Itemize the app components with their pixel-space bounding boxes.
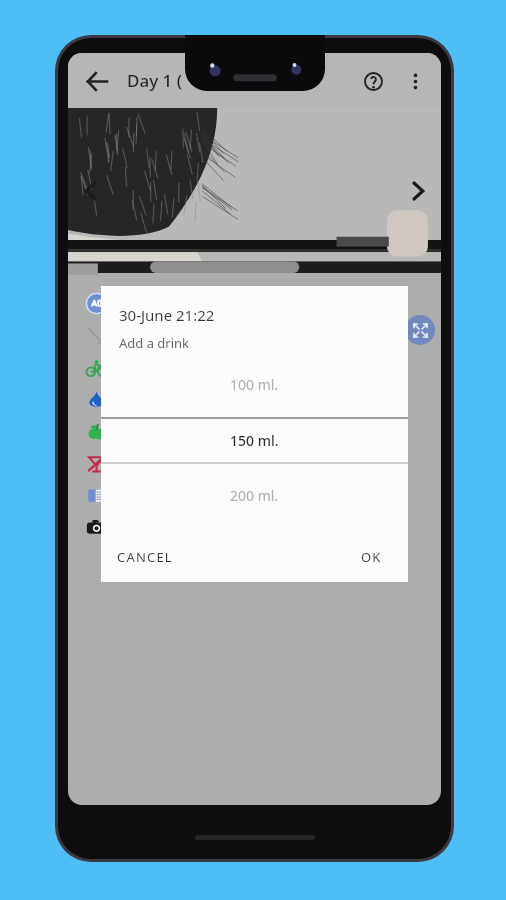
button[interactable] xyxy=(79,447,431,479)
staticText: 150 ml. xyxy=(230,431,279,450)
button[interactable]: Help xyxy=(353,61,393,101)
button[interactable]: Previous photo xyxy=(74,174,108,208)
staticText: CANCEL xyxy=(117,548,173,566)
button[interactable] xyxy=(79,351,431,383)
staticText: OK xyxy=(361,548,382,566)
button[interactable] xyxy=(79,319,431,351)
button[interactable]: Next photo xyxy=(401,174,435,208)
button[interactable] xyxy=(79,479,431,511)
button[interactable] xyxy=(79,383,431,415)
button[interactable] xyxy=(79,415,431,447)
button[interactable]: 150 ml. xyxy=(101,419,408,462)
button[interactable]: Take a progress picture xyxy=(79,511,431,543)
button[interactable] xyxy=(79,287,431,319)
button[interactable]: Back xyxy=(76,60,118,102)
button[interactable]: CANCEL xyxy=(109,542,181,572)
staticText: 200 ml. xyxy=(230,486,279,505)
staticText: Day 1 ( xyxy=(127,69,182,92)
staticText: 100 ml. xyxy=(230,375,279,394)
staticText: Add a drink xyxy=(119,334,190,352)
staticText: 30-June 21:22 xyxy=(119,305,215,325)
button[interactable]: More options xyxy=(395,61,435,101)
button[interactable]: OK xyxy=(353,542,390,572)
button[interactable]: Fullscreen xyxy=(405,315,435,345)
